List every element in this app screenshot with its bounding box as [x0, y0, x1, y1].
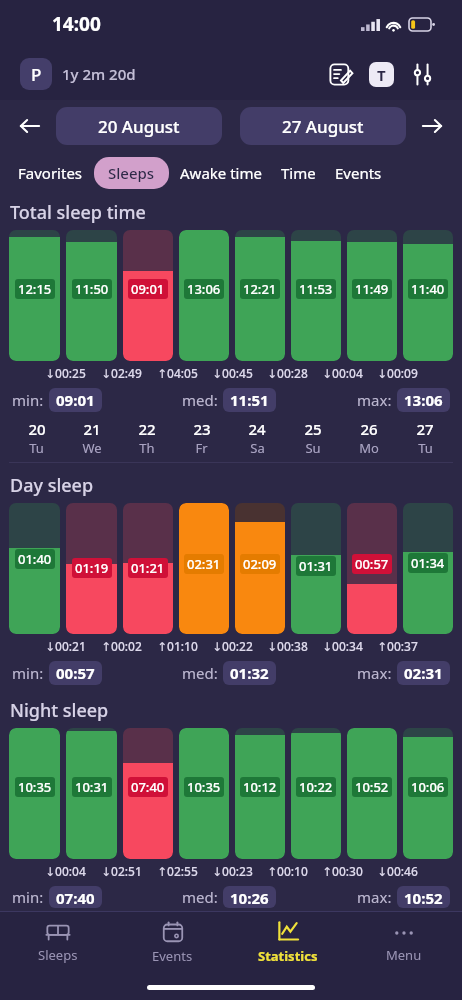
- button[interactable]: 11:49: [347, 230, 397, 361]
- button[interactable]: 02:31: [179, 503, 229, 634]
- staticText: 10:35: [18, 778, 52, 796]
- button[interactable]: 01:34: [403, 503, 453, 634]
- button[interactable]: Text: [360, 53, 402, 95]
- staticText: 10:31: [75, 778, 109, 796]
- staticText: ↓00:22: [212, 638, 253, 654]
- staticText: med:: [182, 887, 218, 907]
- staticText: ↓00:09: [377, 365, 418, 381]
- staticText: 10:52: [404, 888, 443, 906]
- staticText: 01:19: [75, 559, 109, 577]
- button[interactable]: Statistics: [230, 912, 346, 974]
- staticText: 11:40: [411, 280, 445, 298]
- button[interactable]: 01:21: [123, 503, 173, 634]
- button[interactable]: Events: [115, 912, 230, 974]
- staticText: 20: [28, 419, 46, 439]
- button[interactable]: 01:19: [66, 503, 117, 634]
- button[interactable]: 12:21: [235, 230, 285, 361]
- staticText: ↑02:55: [157, 863, 198, 879]
- button[interactable]: P: [20, 58, 136, 90]
- button[interactable]: 07:40: [123, 728, 173, 859]
- button[interactable]: 10:22: [291, 728, 341, 859]
- staticText: 13:06: [404, 390, 443, 410]
- button[interactable]: 11:50: [66, 230, 117, 361]
- button[interactable]: 10:31: [66, 728, 117, 859]
- staticText: 11:51: [230, 390, 269, 410]
- button[interactable]: Menu: [346, 912, 462, 974]
- staticText: We: [82, 439, 102, 457]
- staticText: ↓00:04: [322, 365, 363, 381]
- staticText: ↓02:51: [101, 863, 142, 879]
- staticText: 10:35: [187, 778, 221, 796]
- button[interactable]: 00:57: [347, 503, 397, 634]
- button[interactable]: 20 August: [56, 107, 222, 145]
- button[interactable]: Sleeps: [94, 157, 169, 189]
- staticText: Events: [152, 947, 193, 965]
- button[interactable]: 02:09: [235, 503, 285, 634]
- staticText: ↓00:46: [377, 863, 418, 879]
- staticText: 10:52: [355, 778, 389, 796]
- button[interactable]: Favorites: [10, 157, 91, 189]
- button[interactable]: 11:53: [291, 230, 341, 361]
- button[interactable]: 09:01: [123, 230, 173, 361]
- staticText: 21: [83, 419, 101, 439]
- button[interactable]: 01:40: [9, 503, 60, 634]
- staticText: min:: [12, 887, 44, 907]
- staticText: 20 August: [98, 115, 180, 138]
- button[interactable]: 10:52: [347, 728, 397, 859]
- staticText: 10:06: [411, 778, 445, 796]
- staticText: Tu: [418, 439, 433, 457]
- staticText: Total sleep time: [10, 200, 146, 225]
- staticText: 10:12: [243, 778, 277, 796]
- staticText: 27 August: [282, 115, 364, 138]
- button[interactable]: Sleeps: [0, 912, 115, 974]
- staticText: 01:32: [230, 663, 269, 683]
- button[interactable]: Events: [327, 157, 390, 189]
- button[interactable]: Notes: [320, 54, 360, 94]
- staticText: 01:34: [411, 554, 445, 572]
- button[interactable]: 13:06: [179, 230, 229, 361]
- staticText: med:: [182, 663, 218, 683]
- staticText: 1y 2m 20d: [62, 64, 136, 84]
- button[interactable]: 01:31: [291, 503, 341, 634]
- staticText: ↑00:30: [322, 863, 363, 879]
- staticText: ↓00:04: [45, 863, 86, 879]
- staticText: P: [31, 63, 42, 86]
- staticText: Th: [139, 439, 155, 457]
- staticText: 12:15: [18, 280, 52, 298]
- staticText: ↑00:37: [377, 638, 418, 654]
- staticText: ↓00:38: [267, 638, 308, 654]
- staticText: ↓00:23: [212, 863, 253, 879]
- staticText: 10:22: [299, 778, 333, 796]
- staticText: T: [377, 65, 386, 85]
- button[interactable]: 10:35: [179, 728, 229, 859]
- staticText: 07:40: [56, 888, 95, 906]
- staticText: 27: [416, 419, 434, 439]
- button[interactable]: 12:15: [9, 230, 60, 361]
- staticText: 00:57: [355, 555, 389, 573]
- button[interactable]: Settings: [402, 54, 442, 94]
- button[interactable]: 11:40: [403, 230, 453, 361]
- staticText: 02:31: [187, 555, 221, 573]
- staticText: 24: [248, 419, 266, 439]
- staticText: max:: [357, 663, 392, 683]
- button[interactable]: Previous week: [10, 106, 50, 146]
- button[interactable]: 27 August: [240, 107, 406, 145]
- staticText: Su: [305, 439, 321, 457]
- staticText: Events: [335, 163, 382, 183]
- staticText: Menu: [386, 946, 422, 964]
- staticText: ↑04:05: [157, 365, 198, 381]
- button[interactable]: 10:06: [403, 728, 453, 859]
- staticText: 13:06: [187, 280, 221, 298]
- button[interactable]: Next week: [412, 106, 452, 146]
- staticText: 01:21: [131, 559, 165, 577]
- button[interactable]: 10:35: [9, 728, 60, 859]
- staticText: min:: [12, 390, 44, 410]
- staticText: Mo: [359, 439, 379, 457]
- button[interactable]: Time: [273, 157, 324, 189]
- button[interactable]: Awake time: [172, 157, 270, 189]
- staticText: 02:09: [243, 555, 277, 573]
- staticText: Night sleep: [10, 698, 109, 723]
- button[interactable]: 10:12: [235, 728, 285, 859]
- staticText: 00:57: [56, 663, 95, 683]
- staticText: 11:53: [299, 280, 333, 298]
